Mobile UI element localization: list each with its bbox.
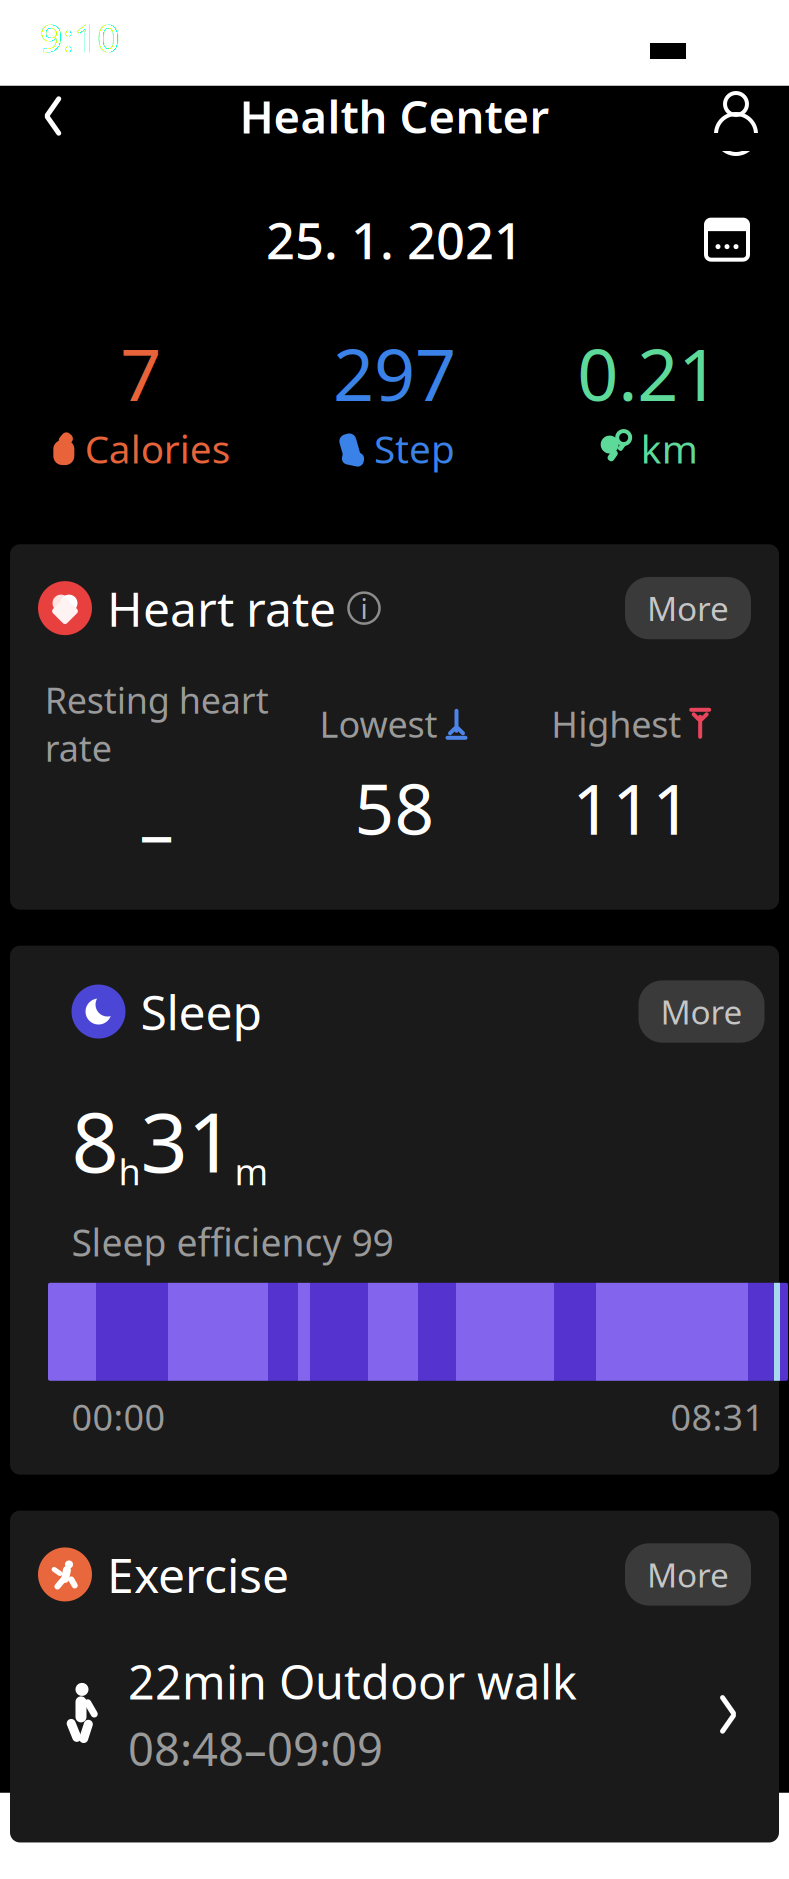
staticText: Calories — [85, 423, 231, 474]
staticText: – — [139, 786, 174, 878]
button[interactable]: More — [638, 980, 764, 1043]
staticText: More — [660, 989, 742, 1034]
staticText: Lowest — [319, 700, 437, 748]
button[interactable]: Back — [26, 89, 80, 143]
staticText: km — [641, 423, 698, 474]
staticText: Health Center — [239, 86, 549, 146]
staticText: Exercise — [107, 1543, 289, 1606]
staticText: i — [360, 589, 367, 627]
button[interactable]: 22min Outdoor walk — [38, 1606, 751, 1778]
staticText: 8 — [71, 1085, 118, 1195]
staticText: 08:48–09:09 — [128, 1718, 383, 1778]
staticText: Sleep — [140, 980, 262, 1043]
button[interactable]: Profile — [709, 89, 763, 143]
staticText: Step — [374, 423, 455, 474]
staticText: 31 — [140, 1085, 234, 1195]
button[interactable]: Information — [344, 588, 384, 628]
staticText: Resting heart rate — [45, 676, 269, 772]
button[interactable]: More — [625, 1543, 751, 1606]
staticText: 00:00 — [71, 1393, 165, 1441]
button[interactable]: Calendar — [701, 214, 753, 266]
staticText: More — [647, 1552, 729, 1597]
staticText: 58 — [354, 762, 434, 854]
staticText: 22min Outdoor walk — [128, 1650, 577, 1712]
button[interactable]: More — [625, 577, 751, 639]
staticText: 297 — [333, 325, 456, 421]
staticText: 111 — [572, 762, 692, 854]
staticText: m — [234, 1147, 268, 1195]
staticText: 7 — [120, 325, 161, 421]
staticText: 0.21 — [577, 325, 719, 421]
staticText: 25. 1. 2021 — [266, 206, 523, 273]
staticText: h — [118, 1147, 140, 1195]
staticText: Highest — [551, 700, 681, 748]
staticText: Sleep efficiency 99 — [71, 1217, 393, 1267]
staticText: Heart rate — [107, 576, 336, 640]
staticText: More — [647, 586, 729, 630]
staticText: 9:10 — [40, 10, 120, 63]
staticText: 08:31 — [670, 1393, 764, 1441]
